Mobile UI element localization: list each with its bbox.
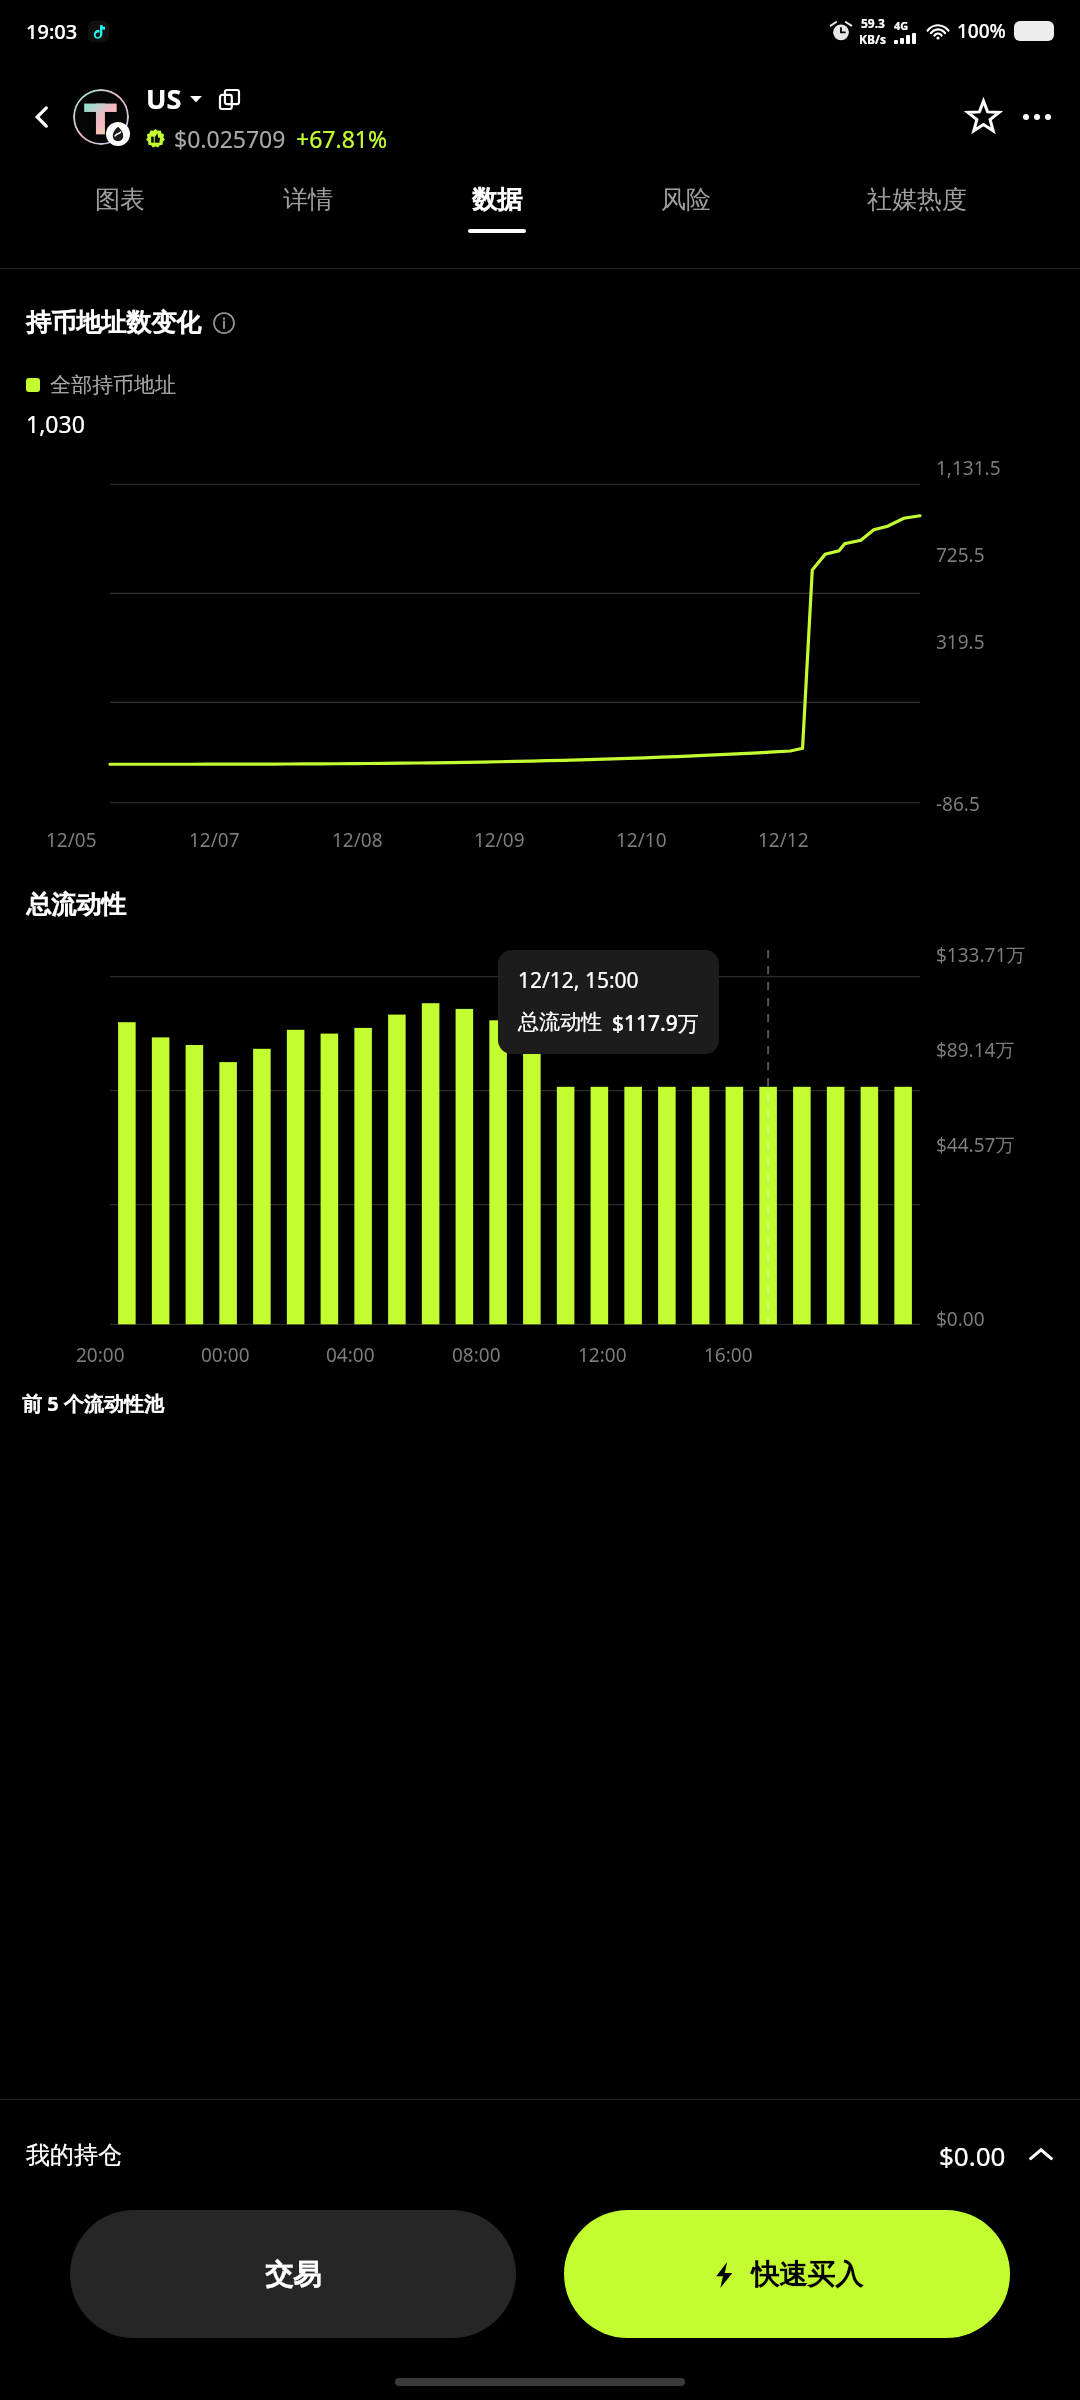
staticText: 持币地址数变化 xyxy=(26,307,201,338)
staticText: 319.5 xyxy=(936,629,985,655)
button[interactable]: 我的持仓 xyxy=(26,2100,1054,2210)
staticText: 12:00 xyxy=(578,1342,704,1368)
staticText: 交易 xyxy=(265,2257,321,2292)
staticText: 图表 xyxy=(95,184,145,215)
button[interactable]: 社媒热度 xyxy=(780,184,1054,229)
staticText: 4G xyxy=(894,18,909,33)
staticText: 59.3 xyxy=(861,15,885,31)
button[interactable]: Back xyxy=(16,91,68,143)
staticText: $0.025709 xyxy=(174,123,286,154)
button[interactable]: 交易 xyxy=(70,2210,516,2338)
staticText: 12/07 xyxy=(189,827,332,853)
staticText: 08:00 xyxy=(452,1342,578,1368)
staticText: US xyxy=(146,80,182,117)
staticText: $44.57万 xyxy=(936,1132,1015,1158)
button[interactable]: Favorite xyxy=(956,90,1010,144)
staticText: 04:00 xyxy=(326,1342,452,1368)
staticText: 725.5 xyxy=(936,542,985,568)
staticText: 快速买入 xyxy=(751,2257,863,2292)
staticText: 详情 xyxy=(283,184,333,215)
staticText: 12/10 xyxy=(616,827,758,853)
staticText: 12/08 xyxy=(332,827,474,853)
staticText: 社媒热度 xyxy=(867,184,967,215)
staticText: 数据 xyxy=(472,184,522,215)
staticText: 12/09 xyxy=(474,827,616,853)
staticText: 19:03 xyxy=(26,18,78,45)
button[interactable]: Info xyxy=(213,312,235,334)
button[interactable]: 数据 xyxy=(402,184,591,233)
button[interactable]: 图表 xyxy=(26,184,214,229)
button[interactable]: 快速买入 xyxy=(564,2210,1010,2338)
staticText: 12/12, 15:00 xyxy=(518,966,639,995)
staticText: 风险 xyxy=(661,184,711,215)
staticText: 1,030 xyxy=(26,408,85,439)
staticText: 100% xyxy=(957,18,1006,44)
staticText: 20:00 xyxy=(76,1342,201,1368)
button[interactable]: Copy xyxy=(216,86,242,112)
staticText: 总流动性 xyxy=(518,1009,602,1035)
staticText: 总流动性 xyxy=(26,889,126,920)
staticText: 12/05 xyxy=(46,827,189,853)
staticText: 1,131.5 xyxy=(936,455,1001,481)
button[interactable]: 详情 xyxy=(214,184,402,229)
staticText: KB/s xyxy=(859,31,886,47)
staticText: 16:00 xyxy=(704,1342,830,1368)
button[interactable]: 风险 xyxy=(591,184,780,229)
staticText: $0.00 xyxy=(936,1306,985,1332)
staticText: 我的持仓 xyxy=(26,2140,122,2170)
staticText: 12/12 xyxy=(758,827,900,853)
staticText: $117.9万 xyxy=(612,1009,699,1038)
staticText: 00:00 xyxy=(201,1342,326,1368)
staticText: $133.71万 xyxy=(936,942,1026,968)
staticText: +67.81% xyxy=(296,123,388,154)
staticText: $0.00 xyxy=(939,2138,1006,2173)
staticText: -86.5 xyxy=(936,791,980,817)
staticText: $89.14万 xyxy=(936,1037,1015,1063)
button[interactable]: More options xyxy=(1010,90,1064,144)
staticText: 全部持币地址 xyxy=(50,372,176,398)
staticText: 前 5 个流动性池 xyxy=(22,1390,164,1417)
